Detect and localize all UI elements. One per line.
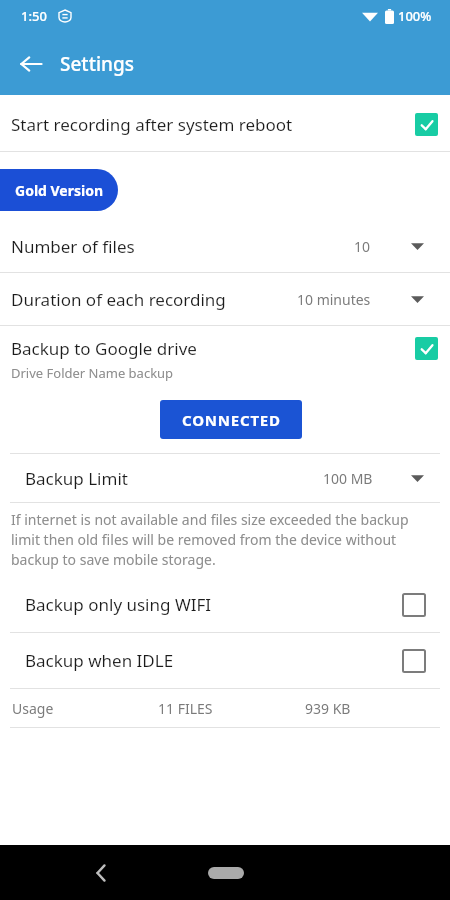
staticText: Backup to Google drive [11,337,197,360]
button[interactable]: Backup when IDLE [0,633,450,688]
button[interactable]: Backup to Google drive [0,326,450,388]
staticText: 11 FILES [158,699,305,718]
button[interactable]: Unchecked [402,649,425,672]
staticText: Duration of each recording [11,288,226,311]
staticText: Backup when IDLE [25,649,174,672]
button[interactable]: Backup Limit [0,454,450,502]
button[interactable]: Home [208,867,244,879]
staticText: If internet is not available and files s… [11,510,439,569]
button[interactable]: Start recording after system reboot [0,102,450,147]
staticText: Drive Folder Name backup [11,364,174,382]
staticText: Backup Limit [25,467,128,490]
button[interactable]: Unchecked [402,593,425,616]
button[interactable]: Gold Version [0,169,118,211]
staticText: 1:50 [21,7,47,25]
staticText: Backup only using WIFI [25,593,212,616]
button[interactable]: Duration of each recording [0,273,450,325]
staticText: 939 KB [305,699,351,718]
staticText: CONNECTED [182,410,281,430]
button[interactable]: Back [10,43,52,85]
staticText: Gold Version [15,181,104,200]
button[interactable]: Back [82,854,120,892]
staticText: Number of files [11,235,135,258]
button[interactable]: CONNECTED [160,400,302,439]
staticText: 100% [398,7,432,25]
button[interactable]: Usage [0,689,450,727]
button[interactable]: Backup only using WIFI [0,577,450,632]
staticText: 10 [354,237,371,256]
button[interactable]: Number of files [0,220,450,272]
staticText: Settings [60,51,134,77]
staticText: 10 minutes [297,290,371,309]
staticText: Usage [12,699,158,718]
staticText: 100 MB [323,469,373,488]
button[interactable]: Checked [415,337,438,360]
button[interactable]: Checked [415,113,438,136]
staticText: Start recording after system reboot [11,113,293,136]
